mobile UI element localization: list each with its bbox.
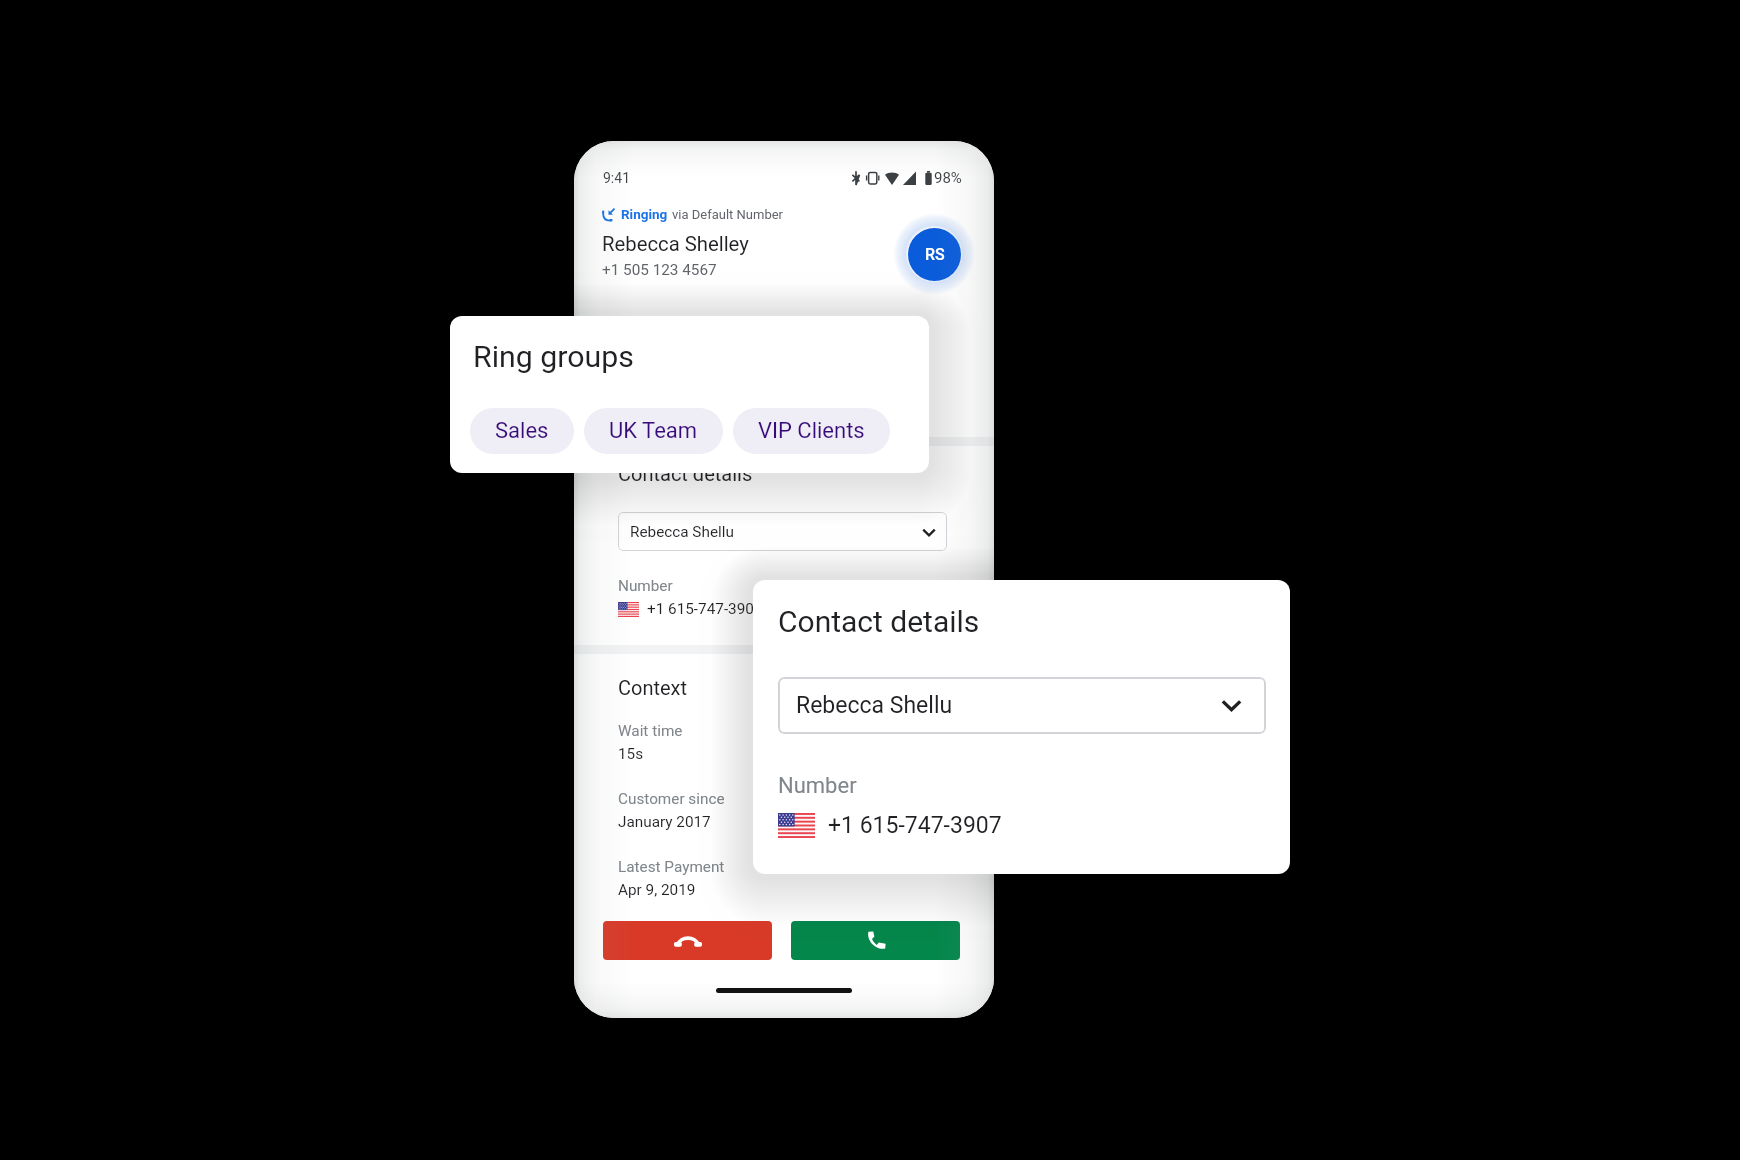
staticText: Contact details bbox=[618, 462, 753, 485]
staticText: +1 505 123 4567 bbox=[602, 261, 717, 279]
staticText: via Default Number bbox=[672, 207, 784, 222]
button[interactable]: Caller avatar bbox=[893, 213, 975, 295]
button[interactable]: Sales bbox=[470, 408, 574, 454]
button[interactable]: VIP Clients bbox=[733, 408, 890, 454]
staticText: +1 615-747-3907 bbox=[828, 812, 1002, 839]
staticText: Rebecca Shelley bbox=[602, 232, 749, 256]
staticText: Wait time bbox=[618, 722, 683, 740]
button[interactable]: Answer call bbox=[791, 921, 960, 960]
staticText: Context bbox=[618, 676, 688, 699]
staticText: Latest Payment bbox=[618, 858, 725, 876]
button[interactable]: Hang up bbox=[603, 921, 772, 960]
staticText: Sales bbox=[495, 418, 549, 444]
staticText: Rebecca Shellu bbox=[796, 692, 953, 719]
staticText: Ringing bbox=[621, 206, 668, 222]
staticText: Rebecca Shellu bbox=[630, 523, 734, 541]
staticText: Contact details bbox=[778, 604, 980, 639]
staticText: RS bbox=[925, 245, 945, 264]
button[interactable]: Rebecca Shellu bbox=[778, 677, 1266, 734]
staticText: Number bbox=[618, 577, 673, 595]
staticText: 98% bbox=[934, 169, 962, 187]
staticText: 9:41 bbox=[603, 170, 630, 186]
staticText: VIP Clients bbox=[758, 418, 865, 444]
staticText: Apr 9, 2019 bbox=[618, 881, 696, 899]
staticText: UK Team bbox=[609, 418, 698, 444]
staticText: +1 615-747-3907 bbox=[647, 600, 763, 618]
staticText: Customer since bbox=[618, 790, 725, 808]
staticText: January 2017 bbox=[618, 813, 711, 831]
button[interactable]: Rebecca Shellu bbox=[618, 512, 947, 551]
staticText: Ring groups bbox=[473, 339, 634, 375]
staticText: 15s bbox=[618, 745, 644, 763]
button[interactable]: UK Team bbox=[584, 408, 723, 454]
staticText: Number bbox=[778, 773, 857, 799]
